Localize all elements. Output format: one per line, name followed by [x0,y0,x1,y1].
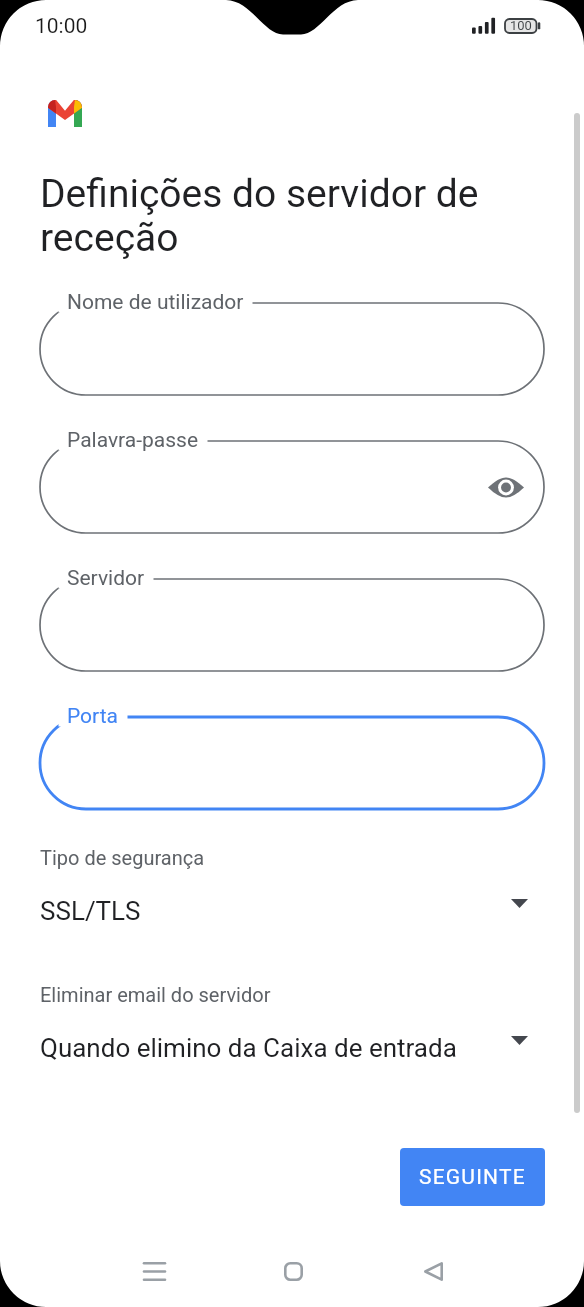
staticText: Quando elimino da Caixa de entrada [40,1033,457,1063]
staticText: SEGUINTE [419,1165,526,1190]
button[interactable]: Mostrar palavra-passe [478,459,534,515]
staticText: Eliminar email do servidor [40,983,271,1006]
staticText: 100 [510,18,532,33]
button[interactable]: SEGUINTE [400,1148,545,1206]
button[interactable]: Eliminar email do servidor [40,983,544,1071]
staticText: Definições do servidor de receção [40,171,522,260]
button[interactable]: Tipo de segurança [40,846,544,934]
button[interactable]: Início [253,1231,333,1307]
staticText: Porta [67,704,119,729]
button[interactable]: Servidor [40,579,544,671]
button[interactable]: Recentes [114,1231,194,1307]
staticText: Palavra-passe [67,428,199,453]
staticText: SSL/TLS [40,896,141,926]
staticText: 10:00 [35,14,88,39]
staticText: Tipo de segurança [40,846,205,869]
staticText: Servidor [67,566,145,591]
button[interactable]: Anterior [393,1231,473,1307]
button[interactable]: Nome de utilizador [40,303,544,395]
button[interactable]: Porta [40,717,544,809]
button[interactable]: Palavra-passe [40,441,544,533]
staticText: Nome de utilizador [67,290,244,315]
